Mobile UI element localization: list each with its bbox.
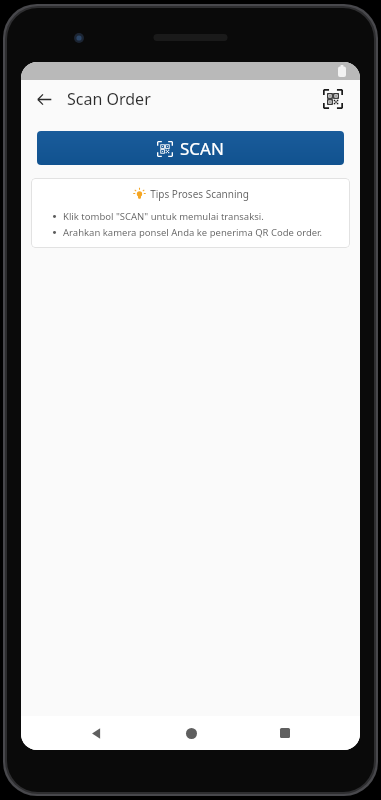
button[interactable]: Back [76,716,116,750]
staticText: Klik tombol "SCAN" untuk memulai transak… [63,210,264,223]
button[interactable]: Home [171,716,211,750]
button[interactable]: Recent apps [265,716,305,750]
button[interactable]: SCAN [37,131,344,165]
staticText: Scan Order [67,88,151,110]
staticText: Arahkan kamera ponsel Anda ke penerima Q… [63,226,323,239]
button[interactable]: Scan QR code [316,82,350,116]
button[interactable]: Back [27,82,61,116]
staticText: Tips Proses Scanning [150,187,249,201]
staticText: SCAN [180,137,224,160]
